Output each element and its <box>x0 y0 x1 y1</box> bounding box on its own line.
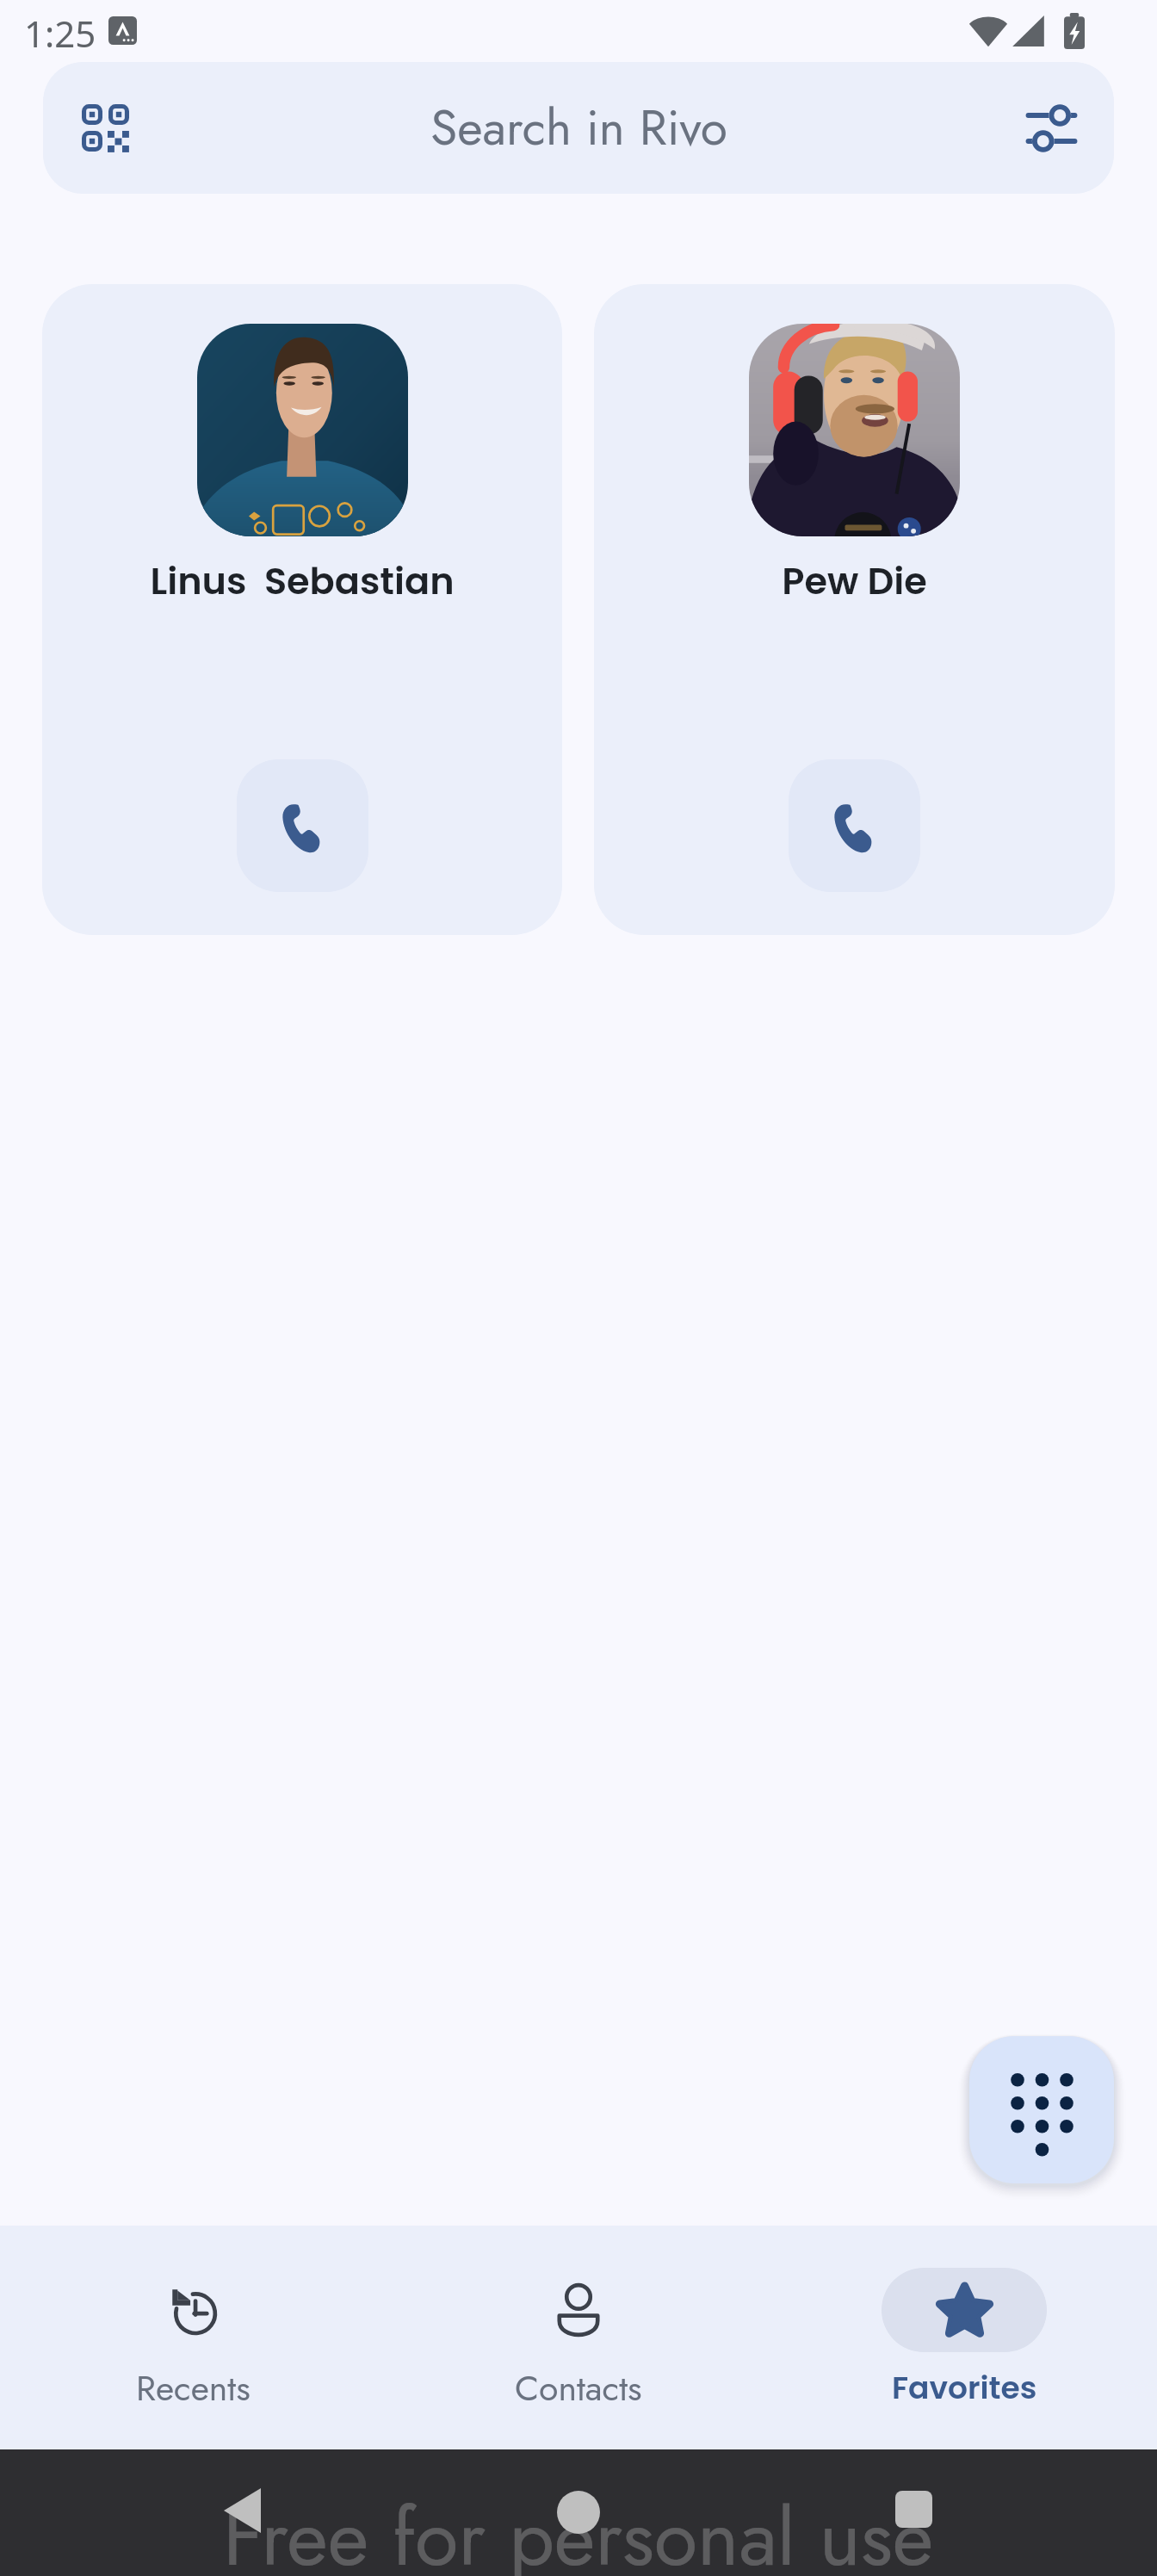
button[interactable]: Linus Sebastian <box>42 284 562 935</box>
button[interactable]: Filter <box>999 77 1103 180</box>
staticText: 1:25 <box>24 9 96 58</box>
staticText: Free for personal use <box>223 2480 934 2576</box>
staticText: Pew Die <box>594 555 1115 607</box>
staticText: Recents <box>136 2362 251 2413</box>
button[interactable]: Favorites <box>771 2226 1157 2449</box>
button[interactable]: Scan QR code <box>43 62 1114 194</box>
staticText: Favorites <box>892 2366 1037 2409</box>
button[interactable]: Call Linus Sebastian <box>237 759 368 892</box>
button[interactable]: Open dialpad <box>969 2036 1114 2183</box>
button[interactable]: Recents <box>0 2226 386 2449</box>
button[interactable]: Call Pew Die <box>789 759 920 892</box>
staticText: Search in Rivo <box>430 92 727 163</box>
staticText: Contacts <box>515 2362 642 2413</box>
button[interactable]: Contacts <box>386 2226 771 2449</box>
button[interactable]: Pew Die <box>594 284 1115 935</box>
staticText: Linus Sebastian <box>42 555 562 607</box>
button[interactable]: Scan QR code <box>53 77 157 180</box>
